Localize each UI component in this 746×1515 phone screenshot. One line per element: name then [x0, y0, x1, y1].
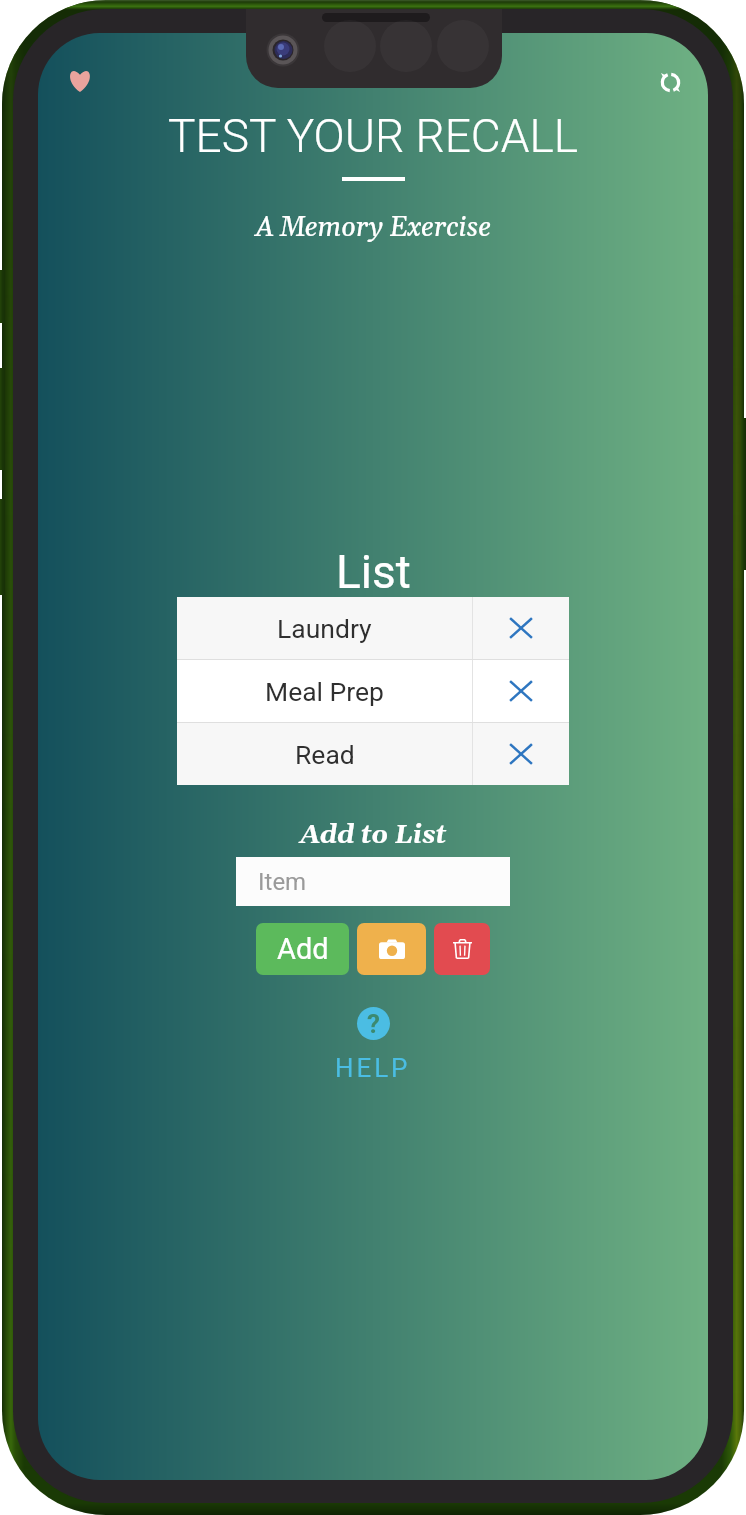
button[interactable]: Read — [177, 723, 472, 785]
button[interactable]: Item — [236, 857, 510, 906]
staticText: Add to List — [300, 819, 447, 852]
button[interactable]: Remove Read — [473, 723, 569, 785]
staticText: List — [336, 545, 411, 599]
staticText: Laundry — [277, 613, 372, 644]
staticText: Read — [295, 739, 355, 770]
staticText: HELP — [335, 1053, 411, 1083]
button[interactable]: ? — [335, 1007, 411, 1083]
button[interactable]: Add — [256, 923, 349, 975]
staticText: A Memory Exercise — [255, 211, 491, 245]
staticText: Meal Prep — [265, 676, 385, 707]
staticText: ? — [367, 1009, 380, 1039]
button[interactable]: Take photo — [357, 923, 426, 975]
staticText: Add — [277, 932, 329, 966]
button[interactable]: Laundry — [177, 597, 472, 659]
staticText: TEST YOUR RECALL — [168, 109, 578, 163]
staticText: Item — [258, 868, 307, 896]
button[interactable]: Favourite — [58, 58, 102, 102]
button[interactable]: Remove Meal Prep — [473, 660, 569, 722]
button[interactable]: Refresh — [648, 60, 692, 104]
button[interactable]: Remove Laundry — [473, 597, 569, 659]
button[interactable]: Delete all — [434, 923, 490, 975]
button[interactable]: Meal Prep — [177, 660, 472, 722]
